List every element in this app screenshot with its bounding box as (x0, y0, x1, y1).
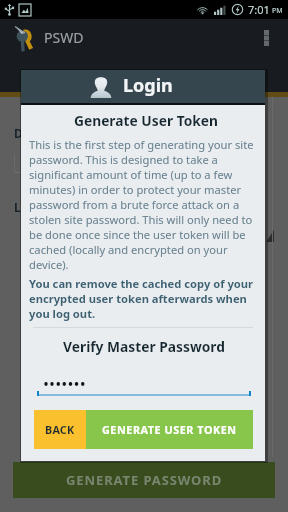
staticText: Verify Master Password (22, 337, 266, 356)
staticText: PM (272, 6, 283, 16)
button[interactable]: BACK (34, 410, 86, 449)
staticText: BACK (45, 422, 75, 437)
staticText: D (14, 125, 23, 141)
staticText: You can remove the cached copy of your e… (29, 276, 259, 321)
staticText: ••••••• (43, 373, 86, 395)
button[interactable]: GENERATE PASSWORD (13, 462, 275, 498)
staticText: L (14, 199, 21, 215)
staticText: This is the first step of generating you… (29, 137, 257, 272)
staticText: GENERATE PASSWORD (66, 471, 223, 489)
staticText: PSWD (44, 28, 84, 47)
staticText: Login (123, 73, 173, 98)
button[interactable]: GENERATE USER TOKEN (86, 410, 253, 449)
staticText: GENERATE USER TOKEN (102, 422, 237, 437)
button[interactable]: More options (254, 23, 278, 53)
staticText: 7:01 (248, 2, 270, 17)
staticText: Generate User Token (24, 111, 268, 130)
